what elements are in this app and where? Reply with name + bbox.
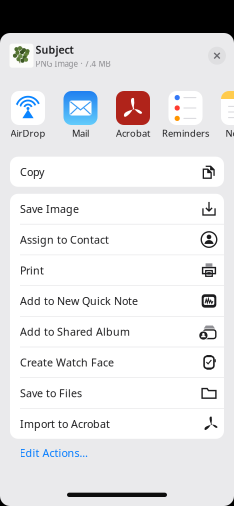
button[interactable]: Save to Files — [10, 378, 224, 408]
staticText: Notes — [225, 127, 234, 139]
button[interactable]: Close — [208, 47, 226, 65]
button[interactable]: Add to New Quick Note — [10, 286, 224, 316]
button[interactable]: Assign to Contact — [10, 224, 224, 255]
button[interactable]: Notes — [221, 92, 234, 139]
button[interactable]: Add to Shared Album — [10, 317, 224, 347]
staticText: Add to Shared Album — [20, 325, 130, 339]
staticText: Acrobat — [116, 127, 150, 139]
staticText: Edit Actions… — [19, 446, 87, 460]
button[interactable]: Edit Actions… — [19, 444, 87, 462]
staticText: Save Image — [20, 202, 79, 216]
staticText: Subject — [35, 43, 73, 57]
button[interactable]: Save Image — [10, 194, 224, 224]
staticText: Import to Acrobat — [20, 417, 110, 431]
button[interactable]: Mail — [63, 92, 97, 139]
button[interactable]: Print — [10, 255, 224, 285]
staticText: Mail — [72, 127, 89, 139]
staticText: Save to Files — [20, 386, 82, 400]
button[interactable]: AirDrop — [11, 92, 45, 139]
staticText: Reminders — [162, 127, 209, 139]
staticText: Assign to Contact — [20, 232, 109, 247]
button[interactable]: Reminders — [168, 92, 202, 139]
staticText: Copy — [20, 165, 44, 179]
button[interactable]: Acrobat — [116, 92, 150, 139]
staticText: Add to New Quick Note — [20, 294, 138, 308]
button[interactable]: Import to Acrobat — [10, 409, 224, 439]
staticText: AirDrop — [10, 127, 45, 139]
button[interactable]: Copy — [10, 157, 224, 187]
staticText: Create Watch Face — [20, 355, 114, 369]
staticText: Print — [20, 263, 44, 277]
staticText: PNG Image · 7.4 MB — [35, 58, 110, 69]
button[interactable]: Create Watch Face — [10, 347, 224, 377]
